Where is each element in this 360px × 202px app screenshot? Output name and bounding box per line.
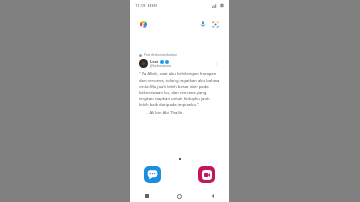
button[interactable]: Voice search	[200, 21, 206, 27]
button[interactable]: More options	[214, 61, 220, 67]
staticText: Lexi	[150, 59, 159, 64]
staticText: - Ali bin Abi Thalib -	[147, 110, 220, 116]
staticText: 11:19	[135, 3, 146, 8]
button[interactable]: Back	[196, 190, 229, 202]
staticText: " Ya Allah, saat aku kehilangan harapan …	[139, 71, 220, 107]
button[interactable]: Profile photo	[139, 59, 148, 68]
staticText: Post direkomendasikan	[144, 53, 178, 57]
button[interactable]: Recents	[130, 190, 163, 202]
button[interactable]: Home	[163, 190, 196, 202]
button[interactable]: Post direkomendasikan	[134, 50, 225, 121]
staticText: @lexiharatama	[150, 64, 172, 68]
button[interactable]: Messages	[144, 166, 161, 183]
button[interactable]: Open app	[198, 166, 215, 183]
button[interactable]: Voice search	[135, 16, 224, 32]
button[interactable]: Google Lens	[212, 21, 219, 28]
